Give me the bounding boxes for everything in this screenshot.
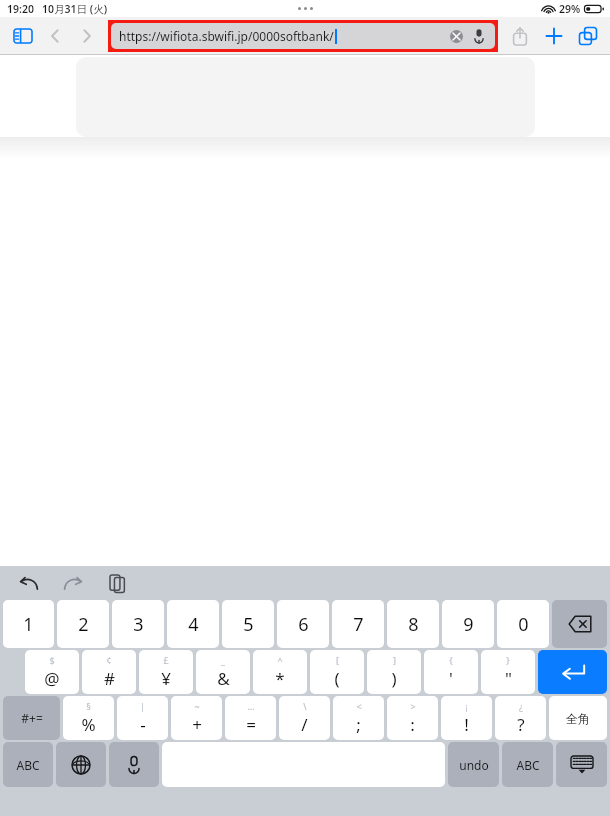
staticText: - bbox=[140, 713, 146, 736]
staticText: ) bbox=[391, 667, 397, 690]
staticText: ] bbox=[393, 654, 396, 666]
staticText: { bbox=[449, 654, 453, 666]
staticText: 7 bbox=[353, 612, 364, 637]
staticText: = bbox=[246, 713, 256, 736]
button[interactable]: Back bbox=[42, 23, 68, 49]
staticText: ^ bbox=[277, 654, 283, 666]
button[interactable]: 9 bbox=[442, 600, 494, 648]
staticText: § bbox=[86, 700, 91, 712]
staticText: > bbox=[410, 700, 416, 712]
button[interactable]: ABC bbox=[502, 742, 553, 787]
button[interactable]: ¿ bbox=[495, 696, 546, 740]
staticText: " bbox=[505, 667, 512, 690]
button[interactable]: Forward bbox=[74, 23, 100, 49]
button[interactable]: Redo bbox=[58, 568, 88, 598]
button[interactable]: 1 bbox=[3, 600, 54, 648]
button[interactable]: undo bbox=[448, 742, 499, 787]
staticText: _ bbox=[221, 654, 225, 666]
button[interactable]: \ bbox=[279, 696, 330, 740]
staticText: : bbox=[410, 713, 415, 736]
staticText: ~ bbox=[194, 700, 200, 712]
button[interactable]: ABC bbox=[3, 742, 53, 787]
staticText: ; bbox=[356, 713, 361, 736]
button[interactable]: ¡ bbox=[441, 696, 492, 740]
button[interactable]: £ bbox=[139, 650, 193, 694]
staticText: ( bbox=[334, 667, 340, 690]
button[interactable]: ¢ bbox=[82, 650, 136, 694]
button[interactable]: https://wifiota.sbwifi.jp/0000softbank/ bbox=[111, 23, 495, 49]
staticText: $ bbox=[49, 654, 55, 666]
button[interactable]: 8 bbox=[387, 600, 439, 648]
staticText: 8 bbox=[408, 612, 419, 637]
staticText: # bbox=[104, 667, 115, 690]
staticText: undo bbox=[459, 757, 489, 773]
staticText: @ bbox=[44, 667, 60, 690]
staticText: 2 bbox=[78, 612, 89, 637]
staticText: 29% bbox=[559, 2, 581, 16]
staticText: ¡ bbox=[465, 700, 468, 712]
button[interactable]: § bbox=[63, 696, 114, 740]
staticText: ¢ bbox=[106, 654, 112, 666]
button[interactable]: 全角 bbox=[549, 696, 607, 740]
staticText: https://wifiota.sbwifi.jp/0000softbank/ bbox=[119, 28, 334, 44]
button[interactable]: _ bbox=[196, 650, 250, 694]
button[interactable]: Show sidebar bbox=[8, 21, 38, 51]
staticText: £ bbox=[163, 654, 169, 666]
button[interactable]: ^ bbox=[253, 650, 307, 694]
button[interactable]: 2 bbox=[57, 600, 109, 648]
staticText: ¿ bbox=[519, 700, 523, 712]
button[interactable]: 3 bbox=[112, 600, 164, 648]
staticText: ABC bbox=[516, 757, 540, 773]
staticText: ' bbox=[449, 667, 453, 690]
staticText: & bbox=[217, 667, 230, 690]
staticText: 0 bbox=[518, 612, 529, 637]
staticText: 6 bbox=[298, 612, 309, 637]
button[interactable]: backspace bbox=[552, 600, 607, 648]
staticText: #+= bbox=[21, 710, 43, 726]
button[interactable]: ] bbox=[367, 650, 421, 694]
staticText: 10月31日 (火) bbox=[42, 2, 108, 16]
staticText: 19:20 bbox=[7, 2, 34, 16]
button[interactable]: ~ bbox=[171, 696, 222, 740]
button[interactable]: #+= bbox=[3, 696, 60, 740]
staticText: } bbox=[506, 654, 510, 666]
button[interactable]: Share bbox=[506, 22, 534, 50]
button[interactable]: $ bbox=[25, 650, 79, 694]
button[interactable]: Show all tabs bbox=[574, 22, 602, 50]
staticText: ABC bbox=[16, 757, 40, 773]
button[interactable]: | bbox=[117, 696, 168, 740]
staticText: 4 bbox=[188, 612, 199, 637]
button[interactable]: 4 bbox=[167, 600, 219, 648]
button[interactable]: [ bbox=[310, 650, 364, 694]
staticText: ? bbox=[517, 713, 525, 736]
button[interactable]: return bbox=[538, 650, 607, 694]
button[interactable]: hidekb bbox=[556, 742, 607, 787]
button[interactable]: … bbox=[225, 696, 276, 740]
button[interactable]: globe bbox=[56, 742, 106, 787]
staticText: | bbox=[140, 700, 145, 712]
button[interactable]: Undo bbox=[14, 568, 44, 598]
staticText: 1 bbox=[23, 612, 34, 637]
button[interactable]: 5 bbox=[222, 600, 274, 648]
staticText: / bbox=[301, 713, 308, 736]
staticText: < bbox=[356, 700, 362, 712]
button[interactable]: 0 bbox=[497, 600, 549, 648]
button[interactable]: 6 bbox=[277, 600, 329, 648]
button[interactable]: } bbox=[481, 650, 535, 694]
staticText: * bbox=[275, 667, 285, 690]
button[interactable]: < bbox=[333, 696, 384, 740]
button[interactable]: mic bbox=[109, 742, 159, 787]
staticText: 5 bbox=[243, 612, 254, 637]
staticText: + bbox=[192, 713, 202, 736]
button[interactable]: 7 bbox=[332, 600, 384, 648]
staticText: … bbox=[247, 700, 255, 712]
staticText: ! bbox=[464, 713, 469, 736]
button[interactable]: Paste bbox=[102, 568, 132, 598]
staticText: [ bbox=[336, 654, 339, 666]
button[interactable]: > bbox=[387, 696, 438, 740]
staticText: 3 bbox=[133, 612, 144, 637]
button[interactable]: { bbox=[424, 650, 478, 694]
button[interactable]: New tab bbox=[540, 22, 568, 50]
